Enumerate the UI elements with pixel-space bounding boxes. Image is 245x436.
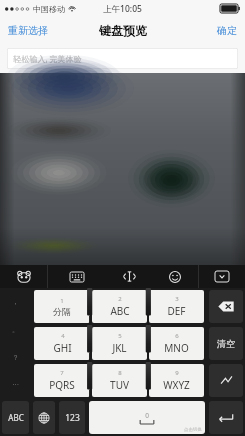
staticText: 中国移动 — [33, 4, 65, 14]
staticText: 确定 — [217, 24, 237, 37]
staticText: 。 — [12, 325, 19, 334]
button[interactable]: 3 — [149, 290, 204, 323]
staticText: 7 — [60, 369, 64, 377]
button[interactable]: ⋯ — [2, 371, 29, 399]
staticText: 1 — [60, 297, 64, 305]
staticText: GHI — [53, 341, 72, 355]
staticText: ABC — [110, 304, 130, 318]
button[interactable]: Hide keyboard — [199, 265, 245, 288]
button[interactable]: 5 — [92, 327, 147, 360]
staticText: 点击切换 — [184, 427, 202, 433]
button[interactable]: 0 — [89, 401, 205, 434]
staticText: 4 — [61, 332, 65, 340]
staticText: 8 — [118, 369, 122, 377]
staticText: 分隔 — [53, 306, 71, 317]
button[interactable]: 1 — [34, 290, 90, 323]
button[interactable]: 7 — [34, 364, 90, 397]
staticText: DEF — [167, 304, 186, 318]
staticText: 123 — [65, 412, 80, 424]
staticText: ？ — [12, 353, 19, 362]
button[interactable]: Keyboard settings — [48, 265, 106, 288]
staticText: TUV — [110, 378, 129, 392]
button[interactable]: 4 — [34, 327, 90, 360]
button[interactable]: 重新选择 — [0, 19, 56, 42]
staticText: 0 — [145, 411, 149, 420]
staticText: JKL — [112, 341, 127, 355]
staticText: 6 — [175, 332, 179, 340]
staticText: PQRS — [49, 378, 75, 392]
staticText: MNO — [164, 341, 189, 355]
staticText: 轻松输入, 完美体验 — [13, 53, 82, 64]
button[interactable]: Move cursor — [106, 265, 152, 288]
staticText: 键盘预览 — [99, 23, 147, 38]
staticText: 重新选择 — [8, 24, 48, 37]
button[interactable]: Return — [209, 401, 243, 434]
staticText: 2 — [118, 295, 122, 303]
button[interactable]: Emoji — [152, 265, 198, 288]
button[interactable]: 123 — [59, 401, 85, 434]
button[interactable]: Input method logo — [0, 265, 47, 288]
staticText: 上午10:05 — [103, 3, 142, 15]
button[interactable]: 2 — [92, 290, 147, 323]
button[interactable]: 清空 — [209, 327, 243, 360]
button[interactable]: Switch language — [33, 401, 55, 434]
button[interactable]: ？ — [2, 343, 29, 371]
staticText: ABC — [8, 412, 24, 423]
button[interactable]: Tone — [209, 364, 243, 397]
button[interactable]: 8 — [92, 364, 147, 397]
staticText: 5 — [118, 332, 122, 340]
staticText: ， — [12, 297, 19, 306]
button[interactable]: ABC — [2, 401, 29, 434]
staticText: WXYZ — [163, 378, 190, 392]
button[interactable]: Delete — [209, 290, 243, 323]
button[interactable]: 确定 — [209, 19, 245, 42]
staticText: 清空 — [217, 338, 235, 349]
button[interactable]: 6 — [149, 327, 204, 360]
button[interactable]: 9 — [149, 364, 204, 397]
staticText: 3 — [175, 295, 179, 303]
staticText: 9 — [175, 369, 179, 377]
staticText: ⋯ — [12, 381, 19, 389]
button[interactable]: 轻松输入, 完美体验 — [7, 48, 238, 69]
